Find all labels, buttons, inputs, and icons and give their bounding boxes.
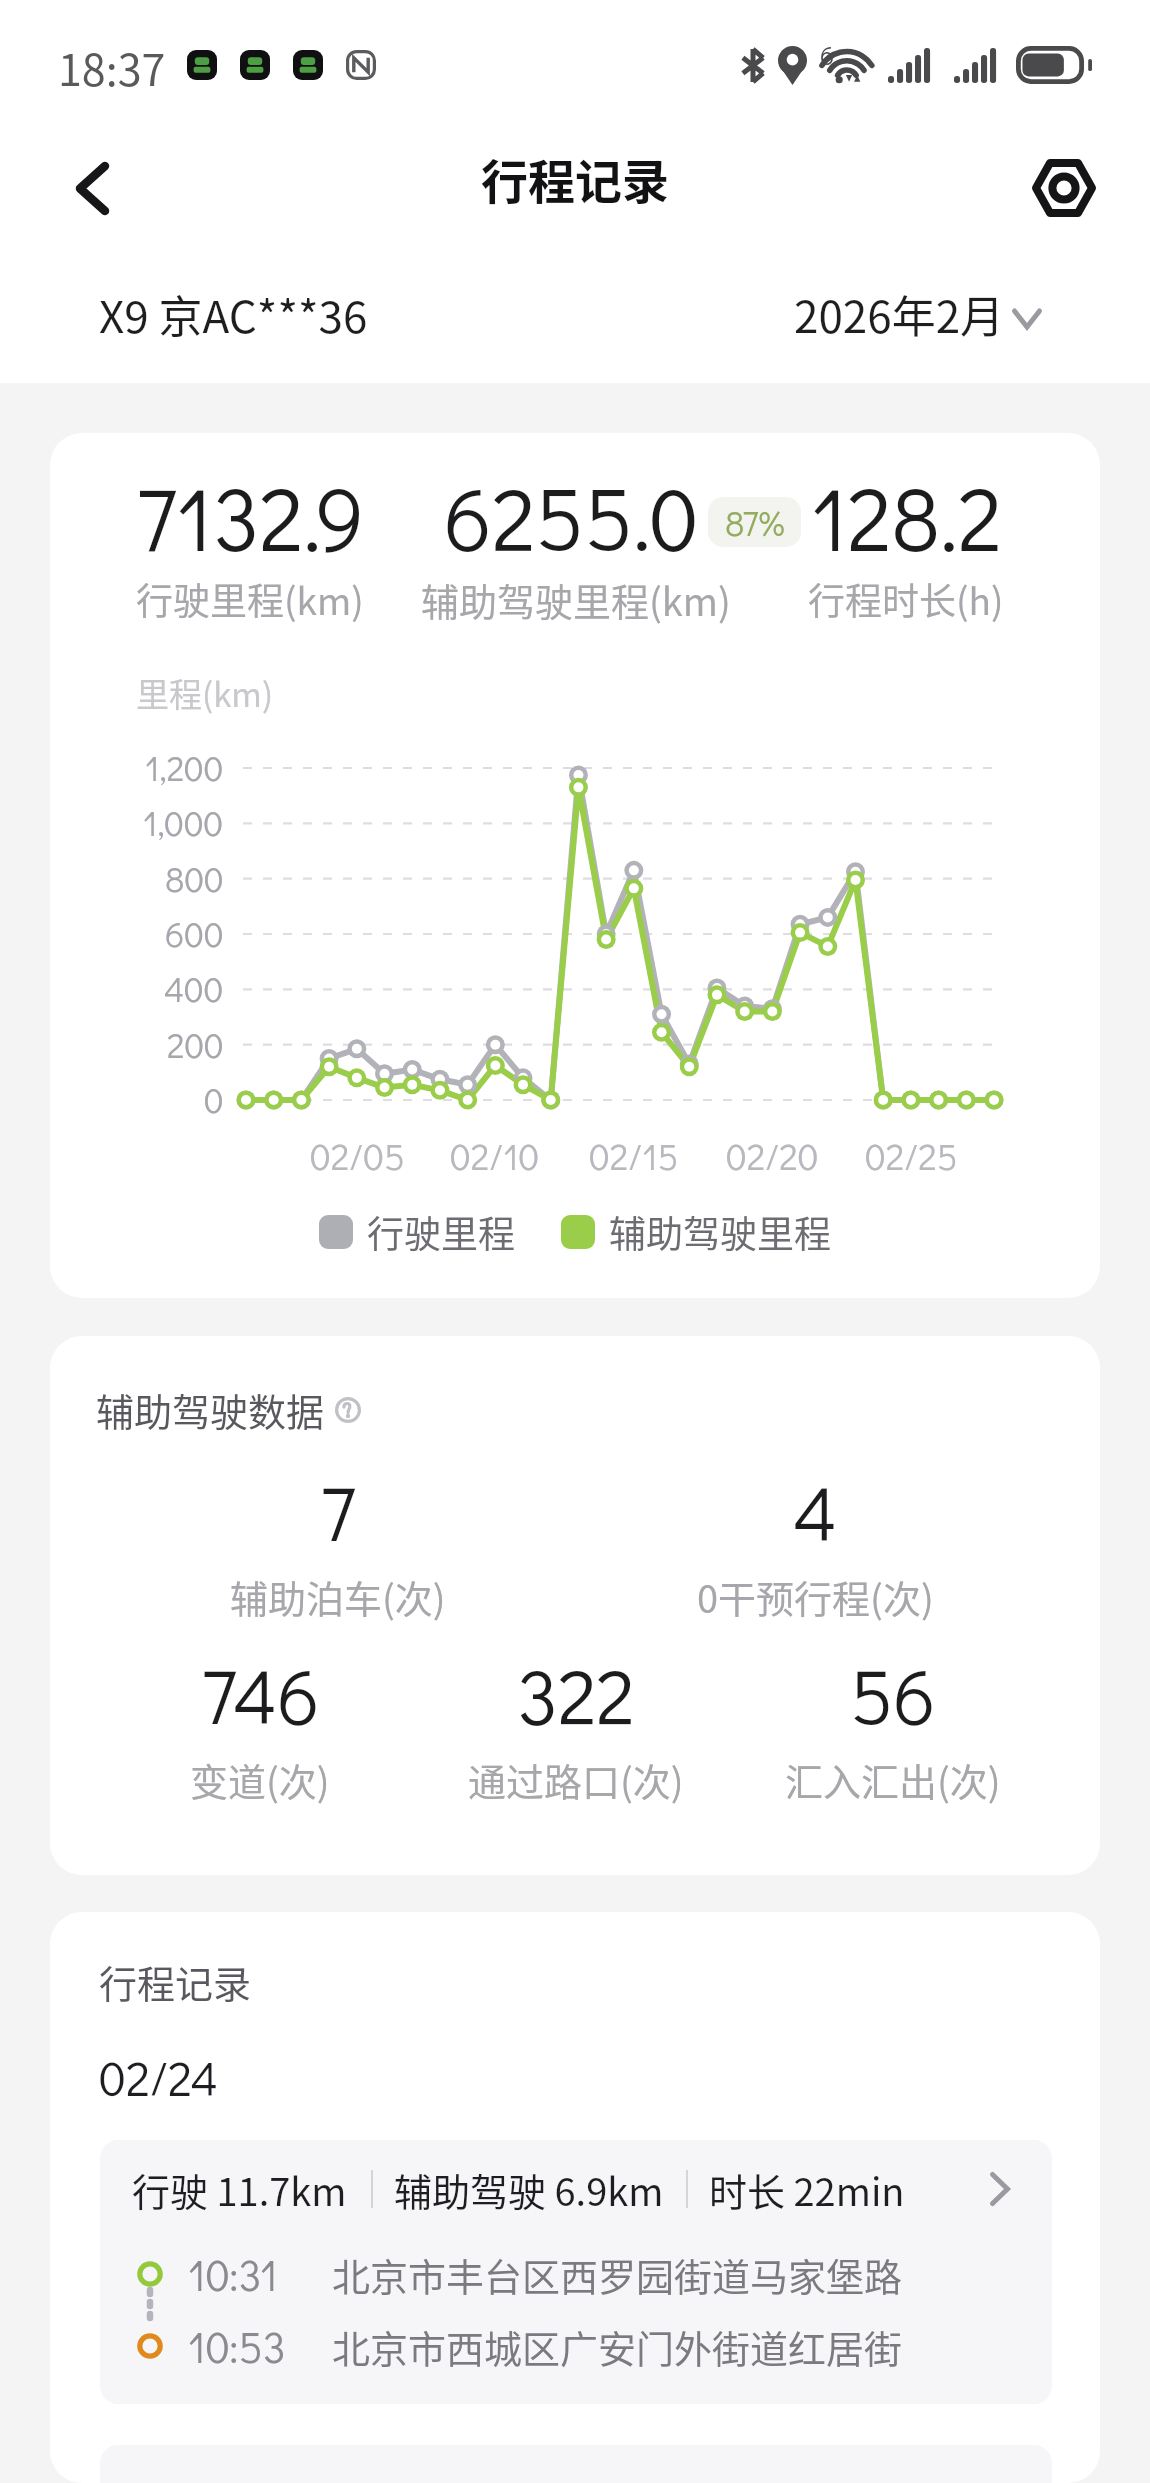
staticText: 辅助驾驶里程 [609,1205,831,1259]
staticText: 02/25 [865,1131,958,1180]
staticText: 里程(km) [136,669,274,717]
staticText: 辅助泊车(次) [230,1569,446,1624]
staticText: 辅助驾驶里程(km) [421,572,731,627]
staticText: 6 [820,38,835,72]
staticText: 6255.0 [444,459,699,573]
staticText: 10:31 [188,2246,278,2302]
staticText: 辅助驾驶数据 [96,1382,325,1437]
staticText: 时长 22min [709,2162,905,2217]
staticText: 02/10 [450,1131,540,1180]
staticText: 10:53 [188,2318,286,2374]
staticText: 02/20 [726,1131,819,1180]
staticText: 2026年2月 [794,282,1005,346]
staticText: 02/15 [589,1131,679,1180]
staticText: 行程记录 [481,144,669,212]
staticText: 变道(次) [190,1752,330,1807]
staticText: 通过路口(次) [468,1752,684,1807]
staticText: 行程记录 [99,1954,252,2009]
staticText: 1,200 [145,744,224,790]
staticText: 行驶里程(km) [136,572,364,626]
staticText: 200 [167,1021,224,1067]
staticText: 746 [201,1643,320,1744]
staticText: 02/05 [310,1131,405,1180]
staticText: 北京市丰台区西罗园街道马家堡路 [332,2247,903,2302]
staticText: 0 [204,1076,224,1122]
staticText: 02/24 [99,2045,219,2108]
staticText: 辅助驾驶 6.9km [394,2162,664,2217]
staticText: 7 [320,1460,356,1561]
staticText: 322 [517,1643,635,1744]
staticText: 行程时长(h) [808,572,1004,626]
staticText: X9 京AC***36 [99,282,368,346]
staticText: 汇入汇出(次) [785,1752,1001,1807]
button[interactable]: 行驶 11.7km [100,2140,1052,2404]
staticText: 18:37 [58,36,166,98]
staticText: 4 [793,1460,838,1561]
button[interactable]: 返回 [42,138,142,238]
staticText: 87% [725,499,785,545]
staticText: 56 [850,1643,936,1744]
staticText: 128.2 [811,459,1002,574]
staticText: 行驶 11.7km [132,2162,347,2217]
staticText: 7132.9 [136,459,365,574]
staticText: 400 [164,965,224,1011]
staticText: 1,000 [143,799,224,845]
staticText: 800 [165,855,224,901]
button[interactable]: 设置 [1014,138,1114,238]
staticText: 600 [165,910,224,956]
staticText: 北京市西城区广安门外街道红居街 [332,2319,903,2374]
staticText: 0干预行程(次) [697,1569,934,1624]
staticText: 行驶里程 [367,1205,515,1259]
button[interactable]: 2026年2月 [794,274,1042,338]
